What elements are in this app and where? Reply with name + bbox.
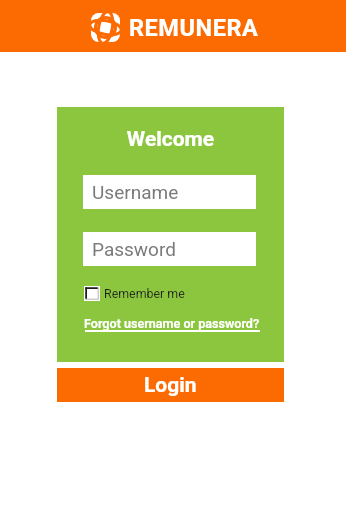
staticText: Remember me <box>104 286 185 301</box>
button[interactable]: Username <box>83 175 256 209</box>
staticText: Welcome <box>57 127 284 152</box>
button[interactable]: Remember me <box>84 286 185 301</box>
staticText: REMUNERA <box>129 14 259 42</box>
staticText: Forgot username or password? <box>84 316 260 331</box>
button[interactable]: Login <box>57 368 284 402</box>
staticText: Password <box>92 238 176 260</box>
button[interactable]: Forgot username or password? <box>84 316 260 331</box>
staticText: Username <box>92 181 179 203</box>
staticText: Login <box>144 373 197 398</box>
button[interactable]: Password <box>83 232 256 266</box>
